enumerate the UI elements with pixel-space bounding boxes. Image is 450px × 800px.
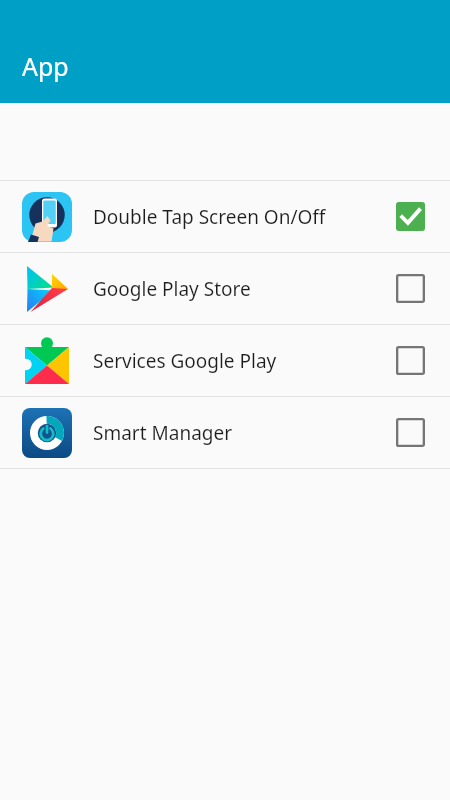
button[interactable]: Services Google Play — [0, 325, 450, 396]
button[interactable]: Disabled checkbox — [396, 274, 425, 303]
staticText: Smart Manager — [93, 420, 396, 446]
button[interactable]: Disabled checkbox — [396, 346, 425, 375]
button[interactable]: Google Play Store — [0, 253, 450, 324]
button[interactable]: Double Tap Screen On/Off — [0, 181, 450, 252]
button[interactable]: Enabled checkbox — [396, 202, 425, 231]
button[interactable]: Disabled checkbox — [396, 418, 425, 447]
staticText: App — [22, 49, 69, 83]
staticText: Services Google Play — [93, 348, 396, 374]
staticText: Double Tap Screen On/Off — [93, 204, 396, 230]
button[interactable]: Smart Manager — [0, 397, 450, 468]
staticText: Google Play Store — [93, 276, 396, 302]
